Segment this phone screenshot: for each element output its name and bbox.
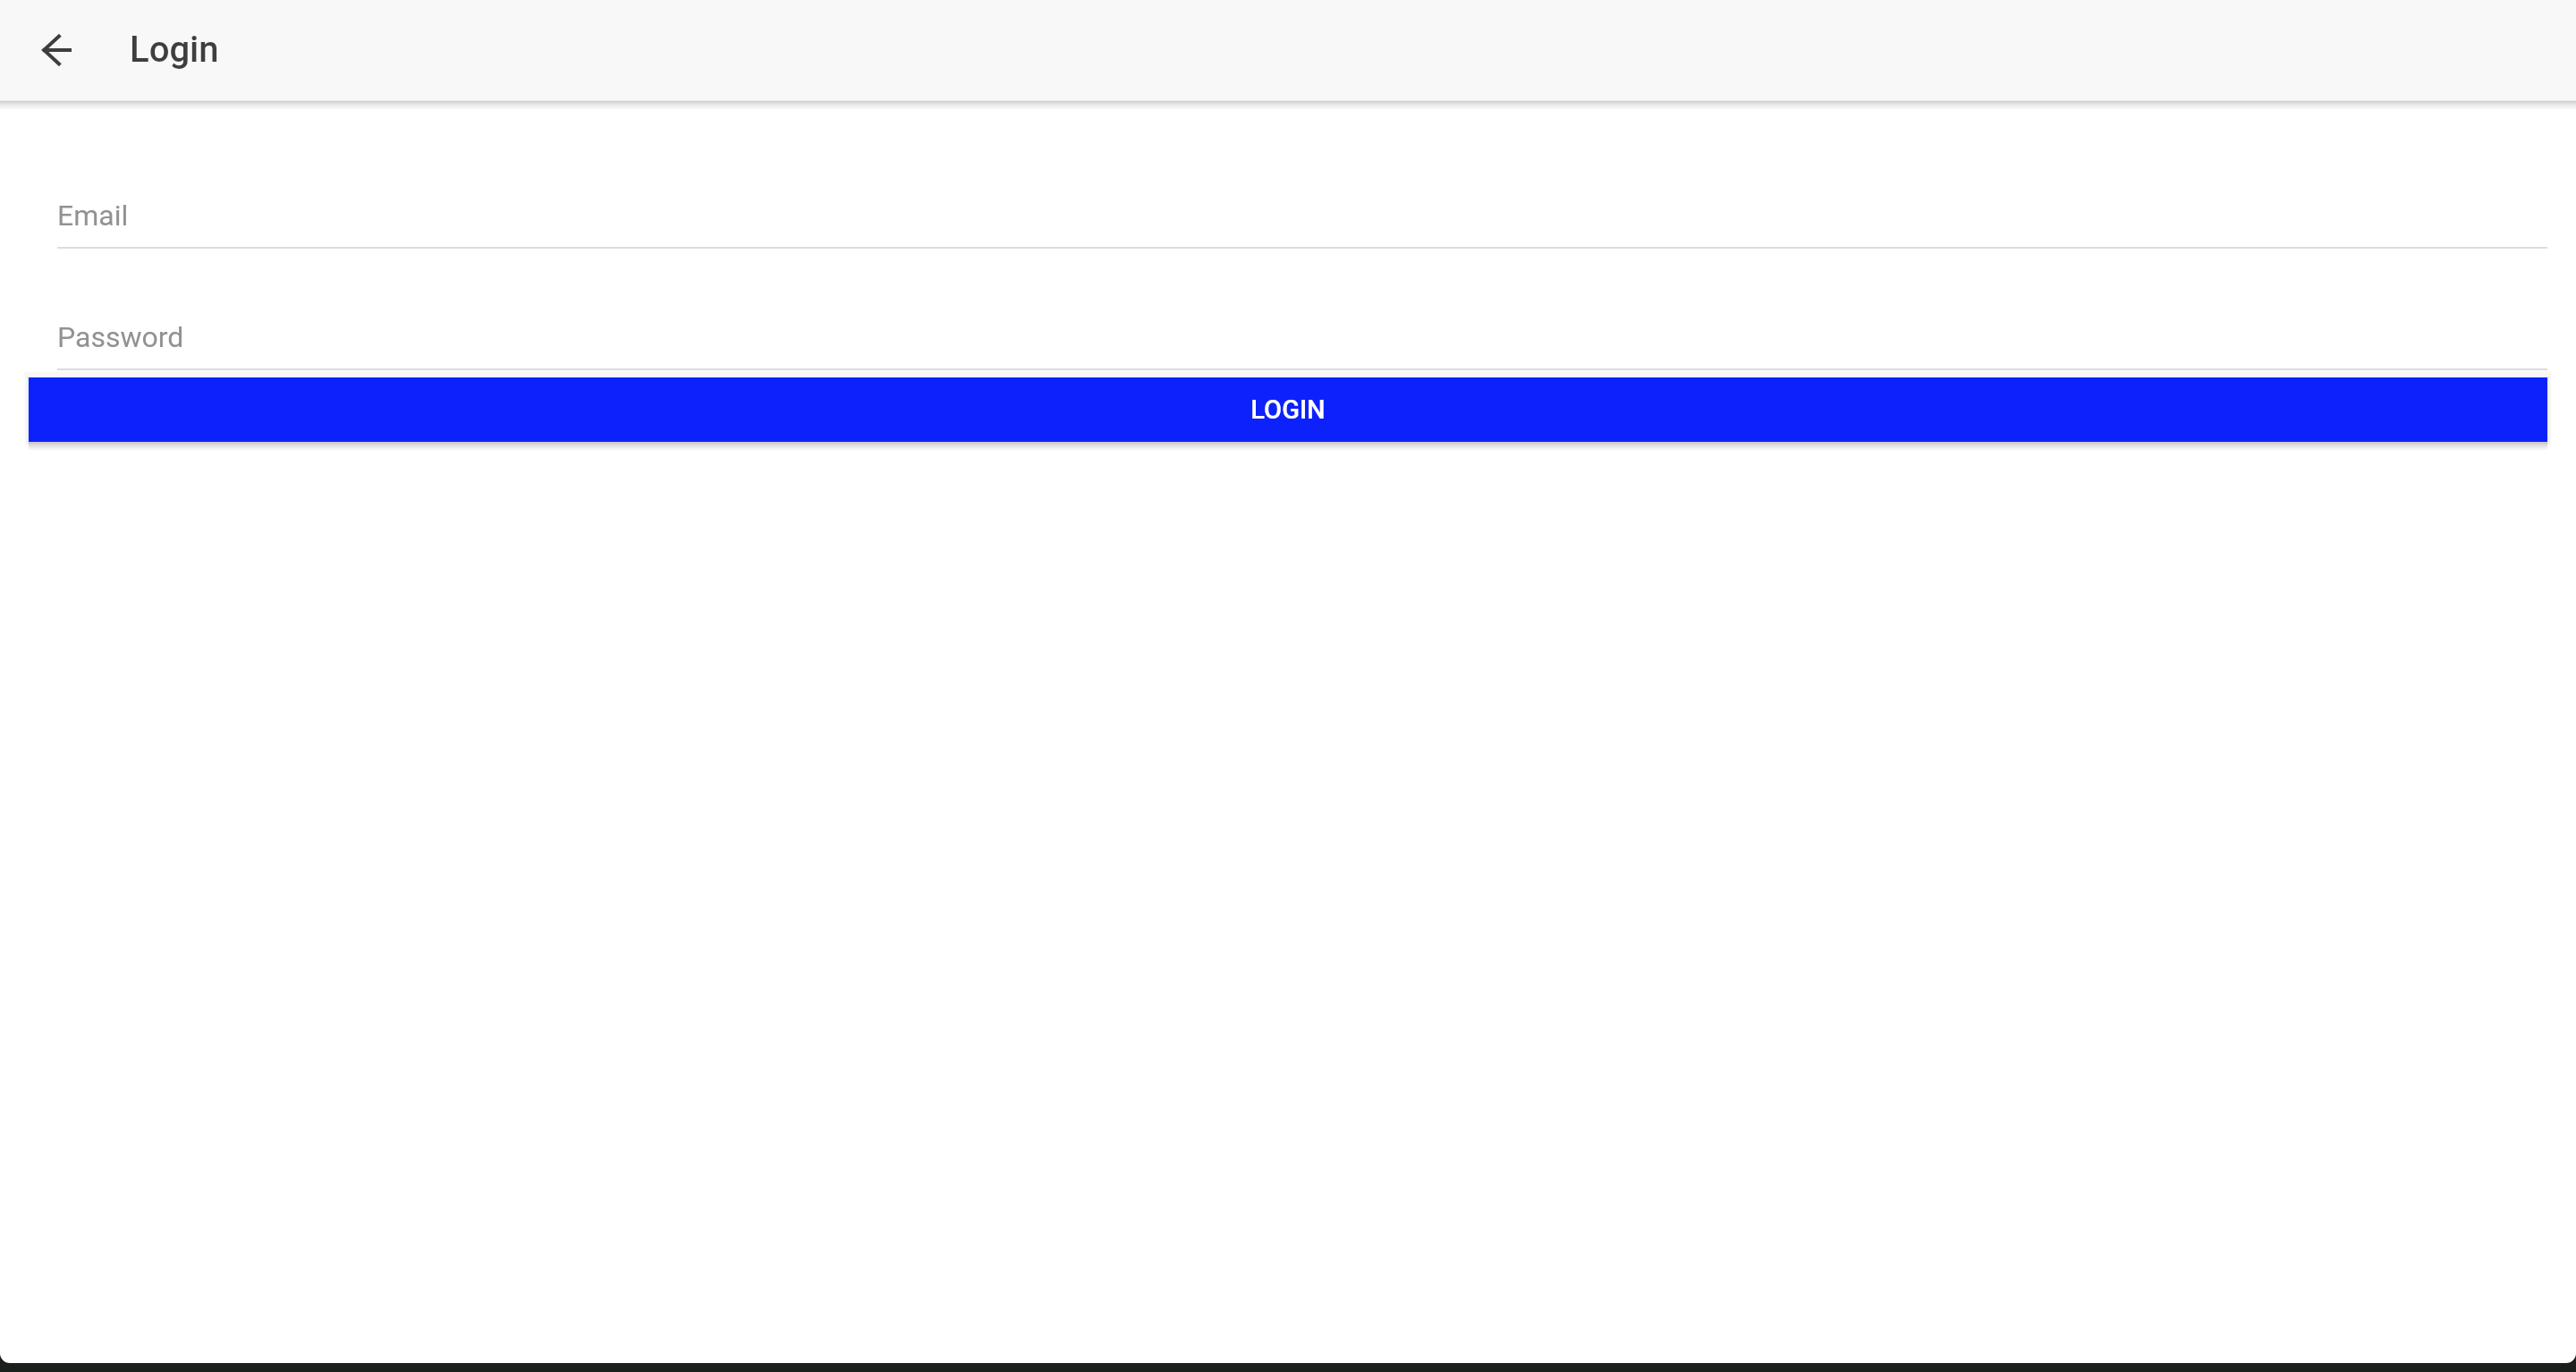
staticText: Password [57,320,184,354]
button[interactable]: Back [29,21,86,79]
staticText: LOGIN [1250,394,1326,425]
staticText: Login [130,29,219,71]
button[interactable]: LOGIN [29,377,2547,442]
staticText: Email [57,199,129,233]
button[interactable] [57,175,2547,249]
button[interactable] [57,297,2547,370]
